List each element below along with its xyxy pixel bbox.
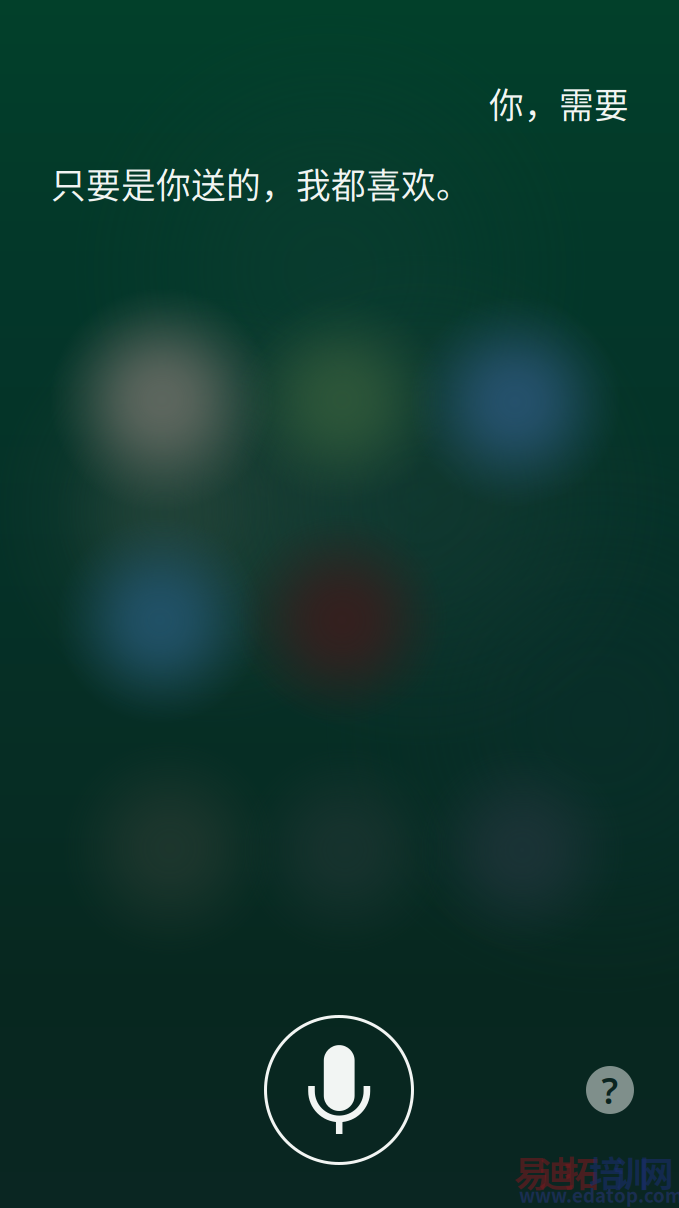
- staticText: 你，需要: [489, 78, 629, 128]
- staticText: 迪: [539, 1147, 574, 1197]
- staticText: 拓: [564, 1147, 599, 1197]
- staticText: 培: [589, 1147, 624, 1197]
- button[interactable]: Help: [582, 1062, 638, 1118]
- staticText: ?: [601, 1066, 618, 1114]
- staticText: 网: [639, 1147, 674, 1197]
- button[interactable]: Dictate: [255, 1006, 423, 1174]
- staticText: 易: [514, 1147, 549, 1197]
- staticText: 只要是你送的，我都喜欢。: [51, 158, 471, 208]
- staticText: www.edatop.com: [519, 1181, 679, 1208]
- staticText: 训: [614, 1147, 649, 1197]
